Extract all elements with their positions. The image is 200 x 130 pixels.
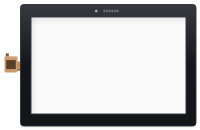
button[interactable]: Tablet touchscreen digitizer panel: [0, 0, 200, 130]
